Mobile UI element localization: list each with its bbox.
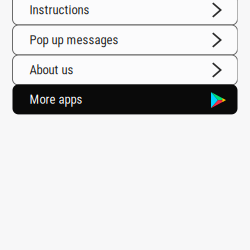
staticText: More apps (29, 92, 82, 107)
staticText: About us (29, 63, 73, 77)
button[interactable]: Pop up messages (12, 25, 237, 55)
button[interactable]: Instructions (12, 0, 237, 25)
button[interactable]: More apps (12, 84, 237, 114)
button[interactable]: About us (12, 55, 237, 85)
staticText: Instructions (29, 3, 89, 17)
staticText: Pop up messages (29, 33, 118, 47)
